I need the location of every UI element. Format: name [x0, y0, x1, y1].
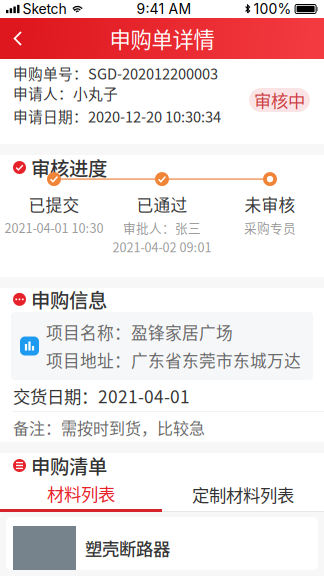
- staticText: 材料列表: [47, 481, 115, 506]
- staticText: Sketch: [22, 0, 66, 17]
- staticText: 申购单详情: [109, 23, 214, 54]
- staticText: 已提交: [28, 192, 79, 216]
- staticText: 申购信息: [31, 285, 107, 313]
- button[interactable]: 定制材料列表: [162, 478, 324, 512]
- staticText: 项目名称：盈锋家居广场: [46, 320, 233, 344]
- staticText: 审批人：张三: [123, 218, 201, 236]
- button[interactable]: Back: [0, 18, 39, 59]
- staticText: 已通过: [136, 192, 187, 216]
- staticText: 未审核: [244, 192, 295, 216]
- staticText: 采购专员: [244, 218, 296, 236]
- staticText: 申购清单: [31, 451, 107, 479]
- staticText: 审核进度: [31, 153, 107, 181]
- staticText: 申请日期：2020-12-20 10:30:34: [13, 105, 221, 127]
- staticText: 9:41 AM: [137, 0, 192, 17]
- staticText: 2021-04-02 09:01: [112, 238, 211, 256]
- staticText: 备注：需按时到货，比较急: [13, 416, 205, 439]
- staticText: 申请人：小丸子: [13, 82, 118, 104]
- staticText: 2021-04-01 10:30: [4, 218, 103, 236]
- staticText: 定制材料列表: [192, 482, 294, 507]
- staticText: 项目地址：广东省东莞市东城万达: [46, 348, 301, 372]
- button[interactable]: 材料列表: [0, 478, 162, 512]
- staticText: 申购单号：SGD-202012200003: [13, 62, 218, 84]
- staticText: 塑壳断路器: [85, 535, 170, 561]
- staticText: 100%: [254, 0, 292, 17]
- staticText: 交货日期：2021-04-01: [13, 383, 190, 408]
- staticText: 审核中: [254, 87, 305, 113]
